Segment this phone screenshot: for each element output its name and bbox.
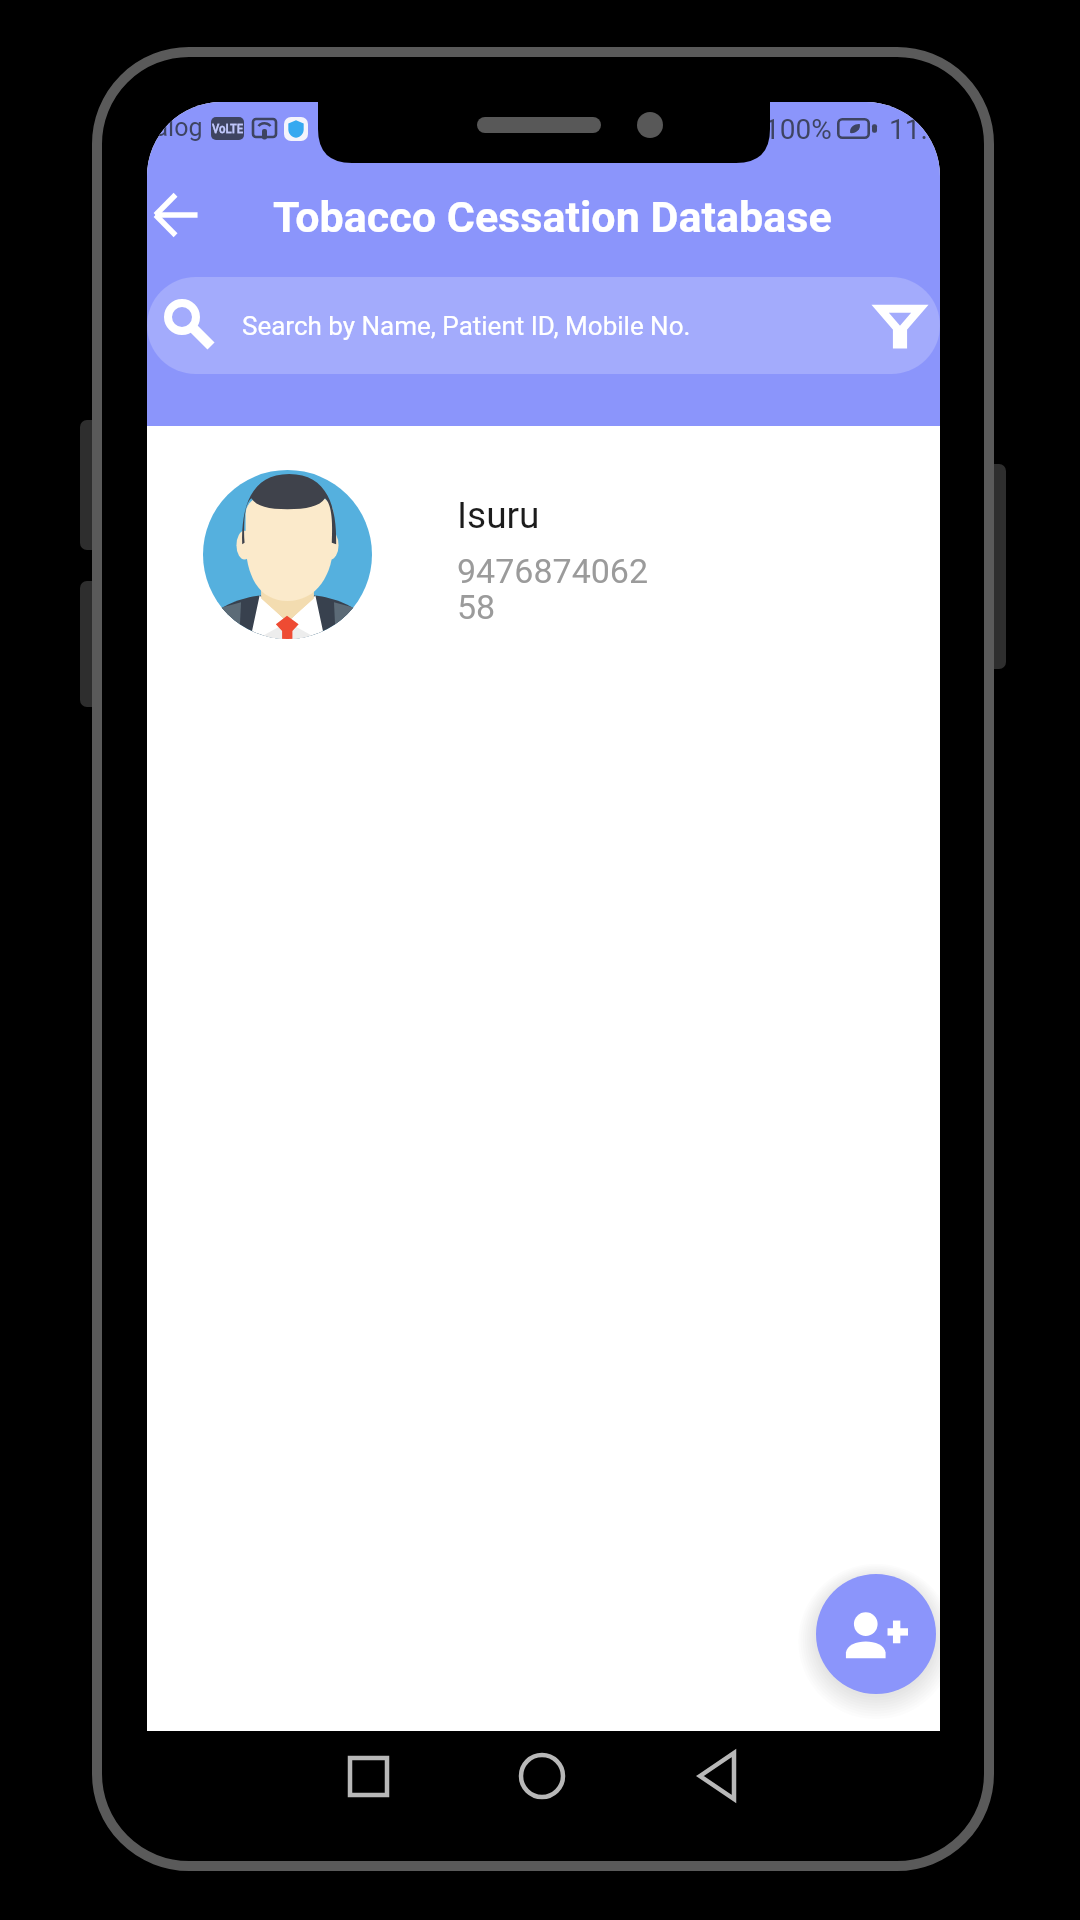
- staticText: Isuru: [457, 494, 540, 537]
- button[interactable]: Home: [506, 1746, 578, 1806]
- staticText: Tobacco Cessation Database: [273, 192, 832, 242]
- staticText: 947687406258: [457, 551, 653, 628]
- button[interactable]: Search by Name, Patient ID, Mobile No.: [147, 277, 940, 374]
- staticText: VoLTE: [212, 121, 244, 136]
- staticText: 11.48: [889, 113, 940, 146]
- button[interactable]: Back: [681, 1746, 753, 1806]
- button[interactable]: Recent apps: [332, 1746, 404, 1806]
- button[interactable]: Isuru: [147, 426, 940, 676]
- button[interactable]: Add patient: [816, 1574, 936, 1694]
- staticText: 100%: [764, 113, 832, 146]
- button[interactable]: Filter: [869, 295, 931, 357]
- button[interactable]: Back: [147, 180, 211, 250]
- staticText: Search by Name, Patient ID, Mobile No.: [242, 311, 691, 341]
- staticText: Dialog: [147, 113, 203, 142]
